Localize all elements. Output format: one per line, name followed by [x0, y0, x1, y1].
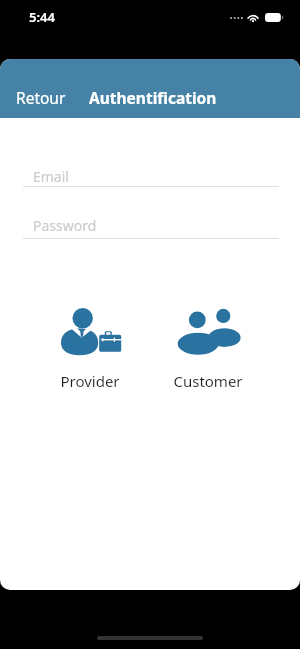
staticText: Password [33, 216, 97, 235]
staticText: Retour [16, 87, 66, 108]
button[interactable]: Customer [149, 308, 267, 391]
staticText: 5:44 [29, 8, 55, 26]
staticText: Provider [60, 371, 120, 391]
staticText: Customer [173, 371, 243, 391]
button[interactable]: Provider [31, 308, 149, 391]
staticText: Email [33, 167, 69, 186]
other: Provider [59, 308, 122, 356]
button[interactable]: Retour [0, 87, 74, 108]
staticText: Authentification [89, 87, 217, 108]
other: Customer [175, 308, 241, 356]
